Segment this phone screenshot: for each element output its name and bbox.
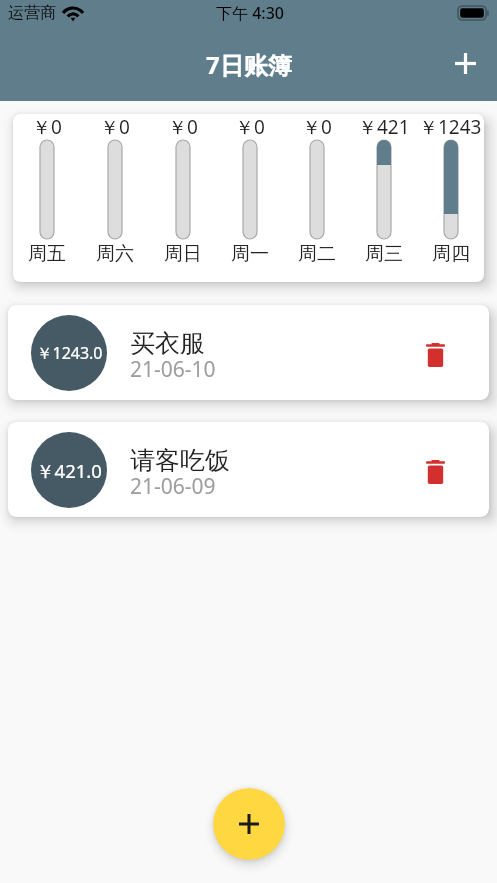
staticText: ￥0 <box>100 114 130 140</box>
staticText: 周五 <box>28 242 66 266</box>
staticText: ￥0 <box>168 114 198 140</box>
staticText: 7日账簿 <box>206 48 292 81</box>
staticText: 周四 <box>432 242 470 266</box>
staticText: ￥0 <box>32 114 62 140</box>
staticText: 请客吃饭 <box>130 445 230 476</box>
staticText: 运营商 <box>8 3 56 23</box>
staticText: 周日 <box>164 242 202 266</box>
staticText: 买衣服 <box>130 328 205 359</box>
staticText: 21-06-10 <box>130 355 216 384</box>
staticText: 周二 <box>298 242 336 266</box>
staticText: 周一 <box>231 242 269 266</box>
button[interactable]: ￥1243.0 <box>8 305 489 400</box>
button[interactable]: Delete <box>411 446 459 494</box>
staticText: ￥1243 <box>419 114 482 140</box>
staticText: 21-06-09 <box>130 472 216 501</box>
staticText: ￥1243.0 <box>36 342 103 364</box>
staticText: ￥0 <box>235 114 265 140</box>
staticText: ￥421 <box>358 114 410 140</box>
button[interactable]: Add entry <box>213 788 285 860</box>
button[interactable]: Add <box>445 43 485 83</box>
staticText: 下午 4:30 <box>216 2 284 24</box>
staticText: ￥421.0 <box>36 458 102 483</box>
staticText: 周六 <box>96 242 134 266</box>
staticText: 周三 <box>365 242 403 266</box>
staticText: ￥0 <box>302 114 332 140</box>
button[interactable]: Delete <box>411 329 459 377</box>
button[interactable]: ￥421.0 <box>8 422 489 517</box>
